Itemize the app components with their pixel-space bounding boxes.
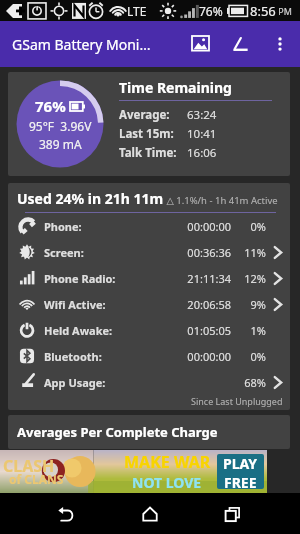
- staticText: 16:06: [187, 145, 217, 161]
- button[interactable]: Phone Radio:: [8, 265, 290, 291]
- staticText: 0%: [231, 219, 266, 234]
- staticText: 00:36:36: [179, 245, 231, 260]
- staticText: 95°F 3.96V: [29, 118, 92, 134]
- button[interactable]: App usage: [220, 24, 260, 64]
- staticText: 63:24: [187, 107, 217, 123]
- staticText: △ 1.1%/h - 1h 41m Active: [164, 194, 278, 207]
- staticText: Used 24% in 21h 11m: [17, 189, 164, 208]
- staticText: of CLANS: [9, 471, 64, 487]
- staticText: 00:00:00: [179, 219, 231, 234]
- staticText: Wifi Active:: [44, 297, 179, 312]
- staticText: 9%: [231, 297, 266, 312]
- staticText: 76%: [35, 96, 66, 116]
- staticText: MAKE WAR: [124, 451, 211, 473]
- staticText: Average:: [119, 107, 187, 123]
- staticText: Screen:: [44, 245, 179, 260]
- staticText: GSam Battery Moni…: [12, 35, 151, 54]
- staticText: 8:56: [250, 2, 276, 20]
- staticText: 11%: [231, 245, 266, 260]
- button[interactable]: Recents: [212, 494, 252, 534]
- staticText: Since Last Unplugged: [191, 395, 283, 407]
- button[interactable]: Screen:: [8, 239, 290, 265]
- staticText: 68%: [231, 375, 266, 390]
- button[interactable]: Back: [46, 494, 86, 534]
- staticText: 389 mA: [39, 136, 82, 152]
- button[interactable]: Phone:: [8, 213, 290, 239]
- staticText: Phone Radio:: [44, 271, 179, 286]
- staticText: 1%: [231, 323, 266, 338]
- staticText: App Usage:: [44, 375, 179, 390]
- staticText: 12%: [231, 271, 266, 286]
- staticText: Phone:: [44, 219, 179, 234]
- button[interactable]: More options: [260, 24, 300, 64]
- staticText: Time Remaining: [119, 78, 232, 97]
- staticText: LTE: [127, 3, 147, 19]
- staticText: 0%: [231, 349, 266, 364]
- staticText: CLASH: [3, 455, 55, 477]
- staticText: 00:00:00: [179, 349, 231, 364]
- staticText: 20:06:58: [179, 297, 231, 312]
- staticText: Last 15m:: [119, 126, 187, 142]
- button[interactable]: Picture: [180, 24, 220, 64]
- staticText: Bluetooth:: [44, 349, 179, 364]
- button[interactable]: Bluetooth:: [8, 343, 290, 369]
- staticText: Talk Time:: [119, 145, 187, 161]
- staticText: FREE: [224, 473, 257, 489]
- button[interactable]: App Usage:: [8, 369, 290, 395]
- staticText: 01:05:05: [179, 323, 231, 338]
- staticText: PM: [276, 5, 292, 17]
- staticText: PLAY: [223, 454, 258, 473]
- button[interactable]: Wifi Active:: [8, 291, 290, 317]
- staticText: Averages Per Complete Charge: [17, 423, 218, 441]
- button[interactable]: Home: [130, 494, 170, 534]
- button[interactable]: Held Awake:: [8, 317, 290, 343]
- staticText: 76%: [199, 3, 223, 19]
- staticText: 10:41: [187, 126, 217, 142]
- staticText: 21:11:34: [179, 271, 231, 286]
- button[interactable]: CLASH: [0, 450, 267, 493]
- staticText: NOT LOVE: [132, 473, 202, 492]
- staticText: Held Awake:: [44, 323, 179, 338]
